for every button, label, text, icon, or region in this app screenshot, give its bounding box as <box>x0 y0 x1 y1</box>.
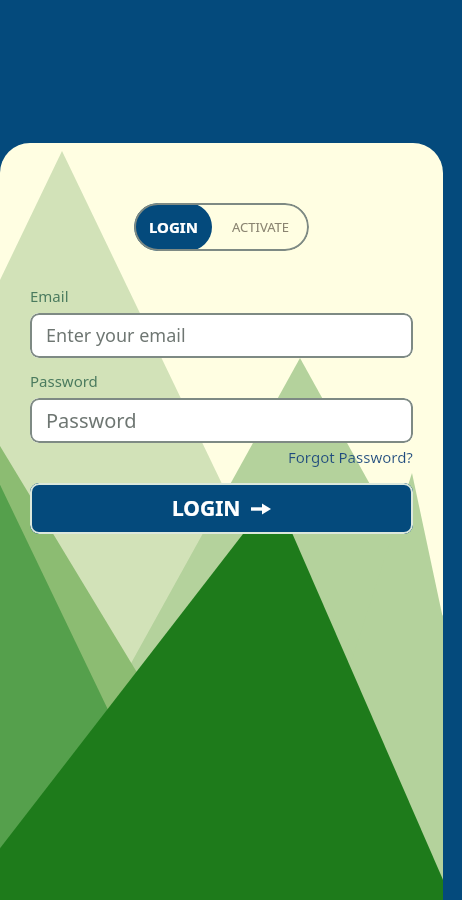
button[interactable]: LOGIN <box>30 483 413 534</box>
staticText: Email <box>30 286 69 306</box>
button[interactable]: Forgot Password? <box>30 447 413 467</box>
staticText: Forgot Password? <box>288 447 413 467</box>
staticText: LOGIN <box>149 217 198 237</box>
button[interactable]: Enter your email <box>30 313 413 358</box>
staticText: Password <box>30 371 98 391</box>
staticText: Enter your email <box>46 323 186 348</box>
button[interactable]: Password <box>30 398 413 443</box>
staticText: ACTIVATE <box>232 218 290 236</box>
staticText: LOGIN <box>172 494 241 523</box>
button[interactable]: LOGIN <box>134 203 212 251</box>
staticText: Password <box>46 407 137 434</box>
button[interactable]: ACTIVATE <box>212 203 309 251</box>
